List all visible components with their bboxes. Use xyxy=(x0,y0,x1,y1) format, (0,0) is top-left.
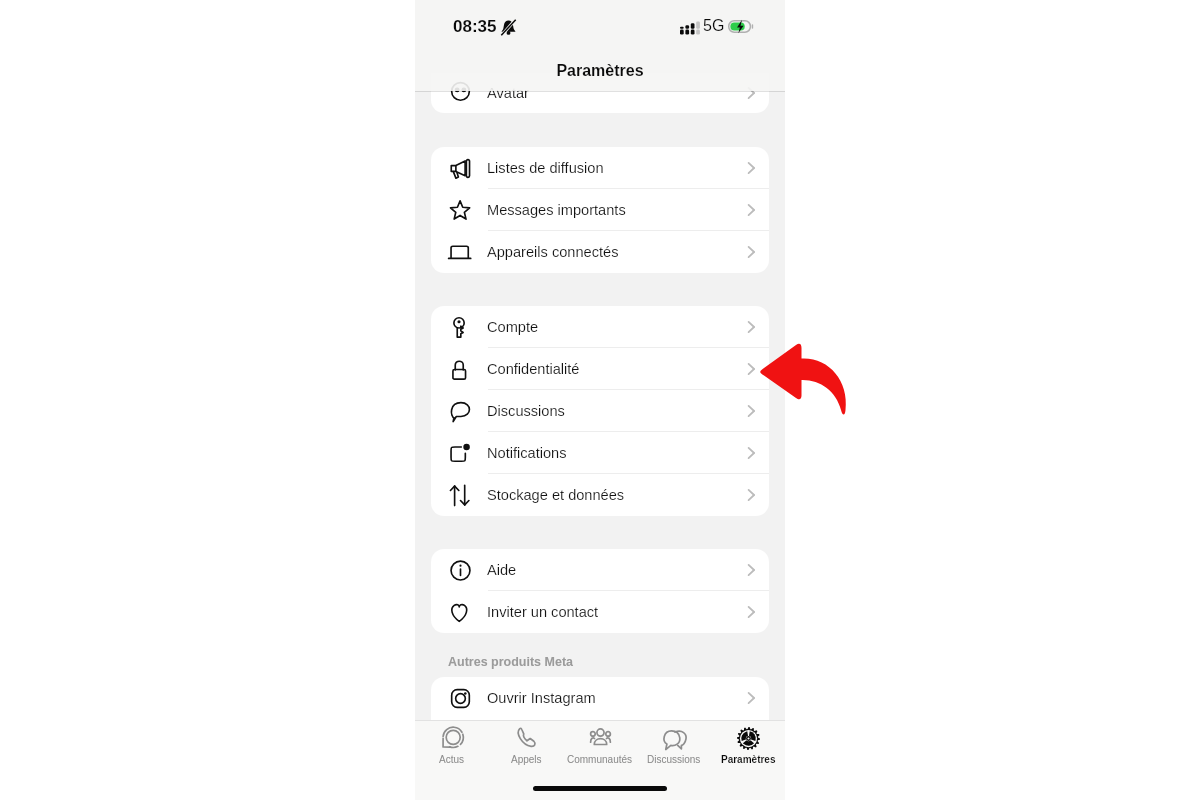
button[interactable]: Actus xyxy=(415,721,489,770)
button[interactable]: Notifications xyxy=(431,432,769,474)
staticText: Messages importants xyxy=(487,202,626,218)
staticText: Aide xyxy=(487,562,517,578)
staticText: Appels xyxy=(511,754,542,765)
staticText: Ouvrir Instagram xyxy=(487,690,596,706)
button[interactable]: Avatar xyxy=(431,73,769,113)
staticText: 08:35 xyxy=(453,17,497,36)
staticText: Communautés xyxy=(567,754,633,765)
button[interactable]: Inviter un contact xyxy=(431,591,769,633)
button[interactable]: Discussions xyxy=(637,721,711,770)
staticText: 5G xyxy=(703,17,725,35)
button[interactable]: Listes de diffusion xyxy=(431,147,769,189)
staticText: Stockage et données xyxy=(487,487,625,503)
staticText: Actus xyxy=(439,754,465,765)
button[interactable]: Compte xyxy=(431,306,769,348)
button[interactable]: Messages importants xyxy=(431,189,769,231)
staticText: Autres produits Meta xyxy=(448,655,574,669)
button[interactable]: Appareils connectés xyxy=(431,231,769,273)
staticText: Discussions xyxy=(647,754,701,765)
button[interactable]: Appels xyxy=(489,721,563,770)
staticText: Listes de diffusion xyxy=(487,160,604,176)
staticText: Inviter un contact xyxy=(487,604,599,620)
button[interactable]: Confidentialité xyxy=(431,348,769,390)
staticText: Discussions xyxy=(487,403,565,419)
staticText: Paramètres xyxy=(721,754,776,765)
staticText: Appareils connectés xyxy=(487,244,619,260)
button[interactable]: Discussions xyxy=(431,390,769,432)
other: Annotation arrow xyxy=(0,0,1200,800)
staticText: Compte xyxy=(487,319,539,335)
button[interactable]: Paramètres xyxy=(711,721,785,770)
button[interactable]: Aide xyxy=(431,549,769,591)
staticText: Confidentialité xyxy=(487,361,580,377)
button[interactable]: Ouvrir Instagram xyxy=(431,677,769,719)
button[interactable]: Stockage et données xyxy=(431,474,769,516)
staticText: Paramètres xyxy=(556,62,644,80)
button[interactable]: Communautés xyxy=(563,721,637,770)
staticText: Notifications xyxy=(487,445,567,461)
staticText: Avatar xyxy=(487,85,529,101)
